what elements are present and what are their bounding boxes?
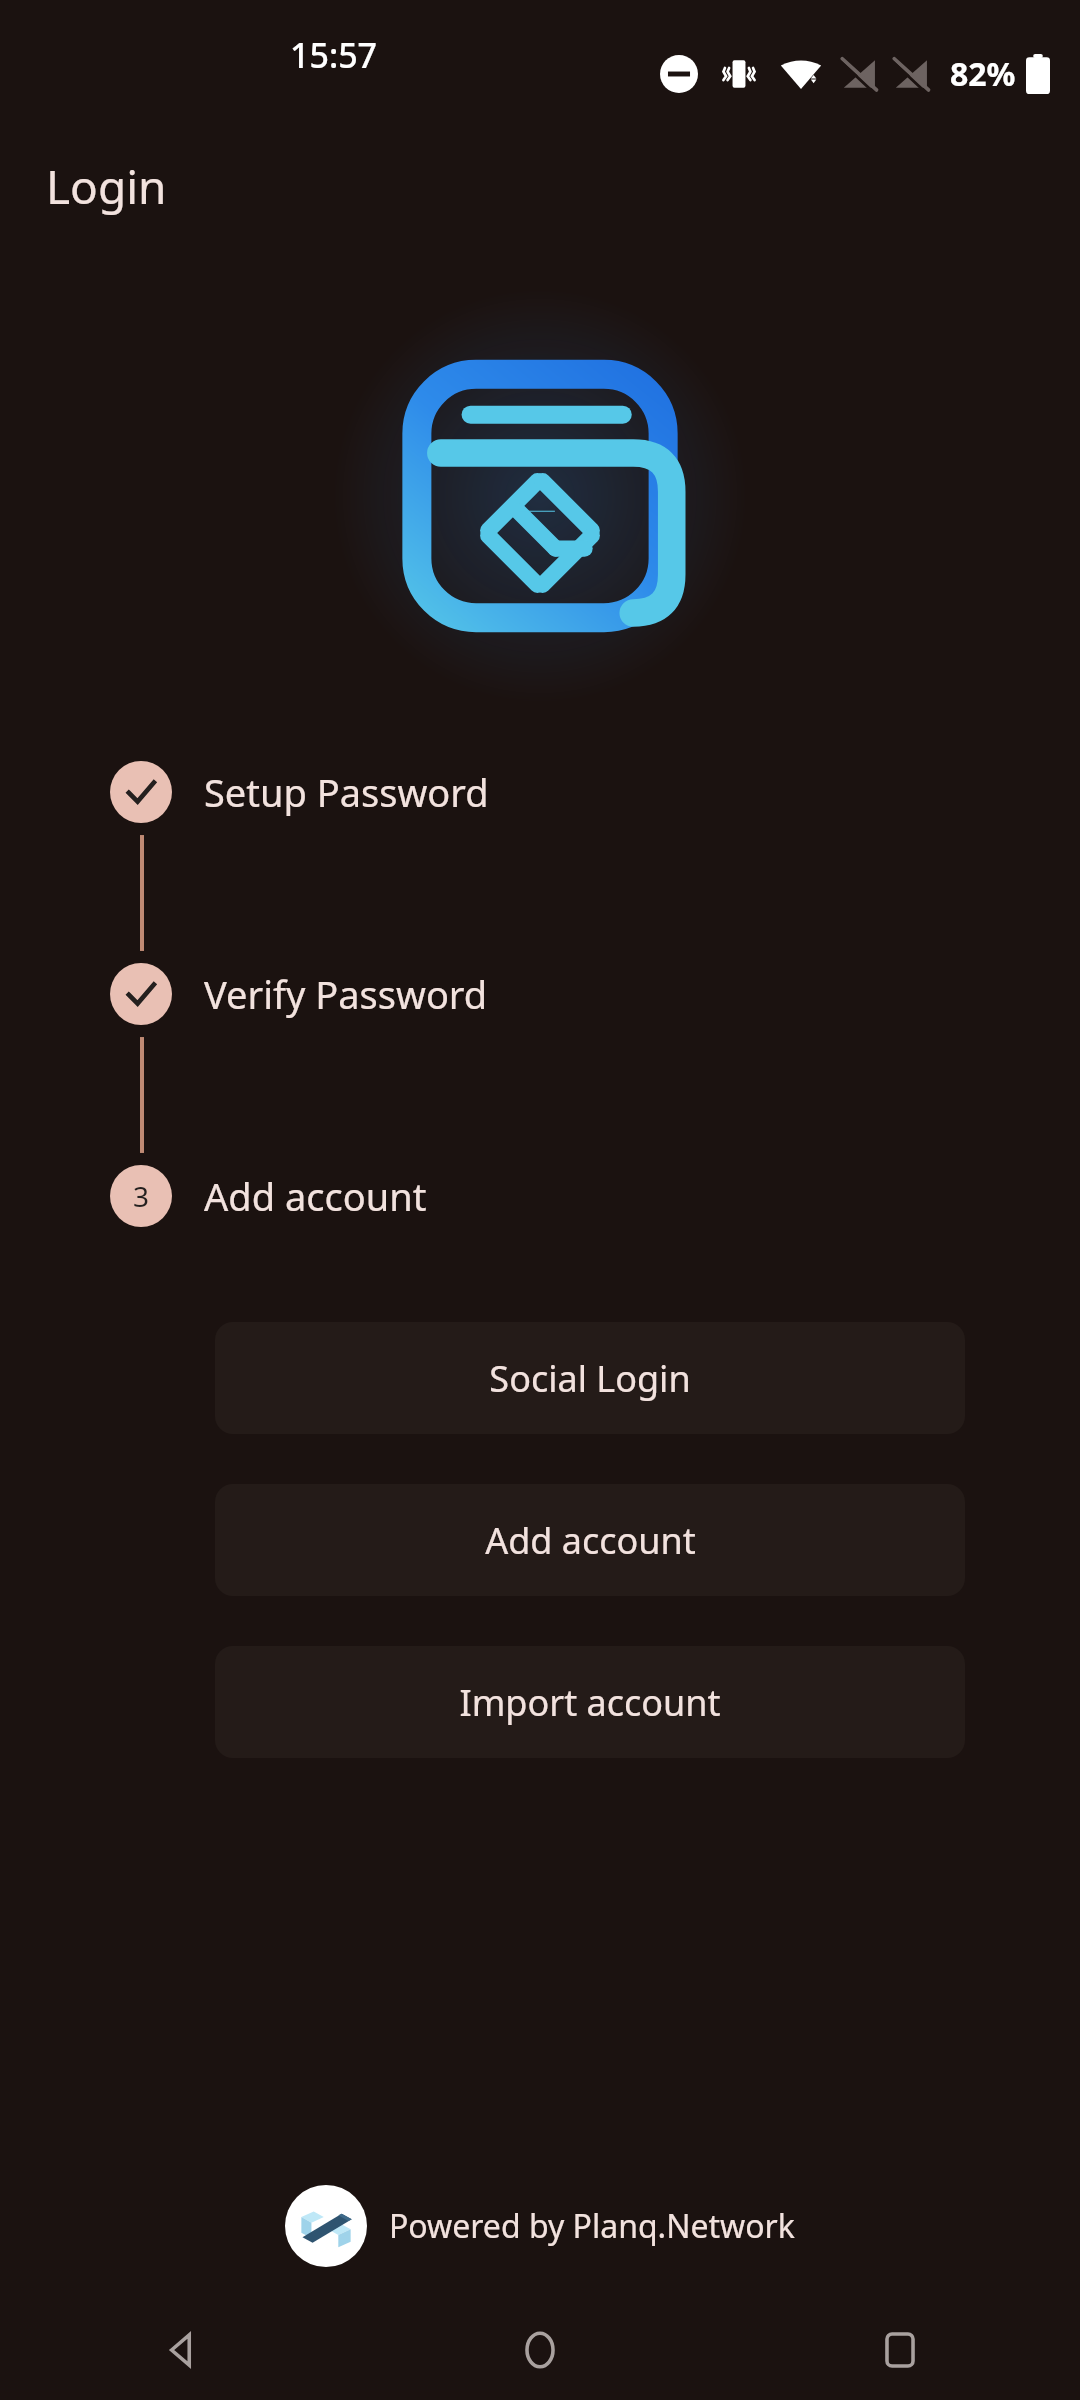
button[interactable]: Recent apps: [720, 2300, 1080, 2400]
button[interactable]: 3: [110, 1164, 427, 1228]
other: Planq Network: [285, 2185, 367, 2267]
staticText: 15:57: [290, 32, 378, 78]
button[interactable]: Import account: [215, 1646, 965, 1758]
button[interactable]: Setup Password: [110, 760, 489, 824]
staticText: Add account: [485, 1516, 696, 1565]
button[interactable]: Social Login: [215, 1322, 965, 1434]
staticText: Import account: [459, 1678, 721, 1727]
button[interactable]: Back: [0, 2300, 360, 2400]
staticText: Verify Password: [204, 968, 488, 1020]
staticText: 3: [133, 1177, 150, 1215]
button[interactable]: Add account: [215, 1484, 965, 1596]
staticText: Add account: [204, 1170, 427, 1222]
staticText: 82%: [950, 52, 1016, 96]
staticText: Powered by Planq.Network: [389, 2204, 795, 2248]
staticText: Social Login: [489, 1354, 691, 1403]
button[interactable]: Verify Password: [110, 962, 488, 1026]
button[interactable]: Planq Network: [285, 2185, 795, 2267]
button[interactable]: Home: [360, 2300, 720, 2400]
staticText: Login: [46, 155, 167, 218]
staticText: Setup Password: [204, 766, 489, 818]
